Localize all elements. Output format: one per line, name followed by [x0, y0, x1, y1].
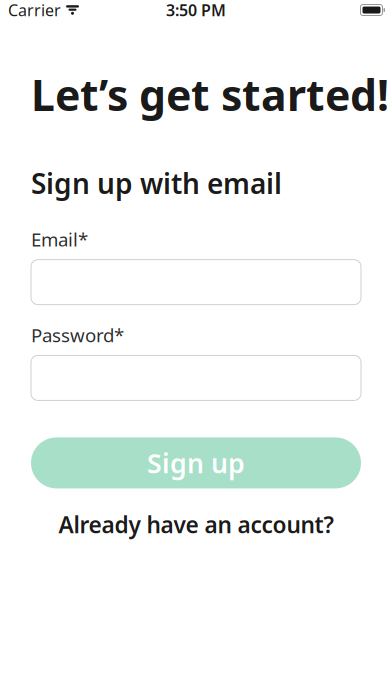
- staticText: Email*: [31, 227, 88, 252]
- staticText: Sign up with email: [31, 165, 282, 202]
- staticText: Password*: [31, 323, 124, 347]
- staticText: Already have an account?: [58, 509, 333, 539]
- staticText: Sign up: [147, 445, 245, 481]
- staticText: 3:50 PM: [166, 0, 226, 21]
- button[interactable]: Sign up: [31, 437, 361, 488]
- staticText: Let’s get started!: [31, 66, 389, 123]
- button[interactable]: Already have an account?: [31, 509, 361, 539]
- staticText: Carrier: [8, 0, 61, 21]
